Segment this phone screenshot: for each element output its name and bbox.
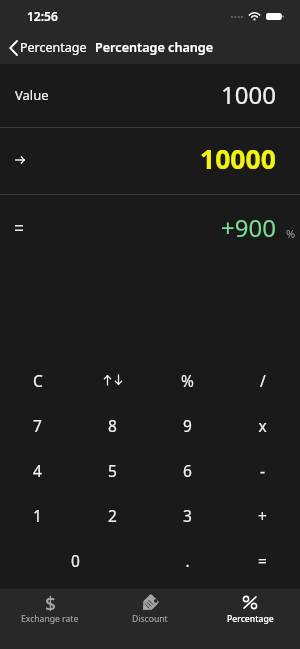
staticText: % [181, 370, 194, 391]
staticText: / [260, 370, 266, 391]
staticText: 2 [108, 505, 117, 526]
button[interactable]: 7 [0, 402, 75, 447]
staticText: $ [45, 591, 56, 611]
button[interactable]: 5 [75, 447, 150, 492]
button[interactable]: 1 [0, 492, 75, 537]
staticText: 0 [71, 550, 80, 571]
button[interactable]: Result plus 900 percent [0, 195, 300, 262]
button[interactable]: C [0, 357, 75, 402]
button[interactable]: = [225, 537, 300, 582]
button[interactable]: 0 [0, 537, 150, 582]
button[interactable]: Converted value 10000 [0, 128, 300, 194]
staticText: 1000 [221, 78, 276, 111]
button[interactable]: $ [0, 589, 100, 649]
staticText: Discount [132, 613, 168, 625]
button[interactable]: + [225, 492, 300, 537]
staticText: C [33, 370, 43, 391]
staticText: 6 [183, 460, 192, 481]
button[interactable]: . [150, 537, 225, 582]
staticText: 7 [33, 415, 42, 436]
button[interactable]: / [225, 357, 300, 402]
staticText: x [258, 415, 267, 436]
button[interactable]: Swap values [75, 357, 150, 402]
button[interactable]: 6 [150, 447, 225, 492]
staticText: Percentage [20, 39, 87, 56]
staticText: 4 [33, 460, 42, 481]
staticText: 12:56 [27, 8, 58, 24]
button[interactable]: 4 [0, 447, 75, 492]
staticText: - [260, 460, 265, 481]
staticText: . [185, 550, 190, 571]
button[interactable]: % [150, 357, 225, 402]
button[interactable]: Back to Percentage [0, 31, 93, 64]
button[interactable]: x [225, 402, 300, 447]
staticText: 9 [183, 415, 192, 436]
staticText: Value [15, 86, 49, 104]
staticText: 10000 [200, 141, 276, 177]
staticText: 3 [183, 505, 192, 526]
button[interactable]: 2 [75, 492, 150, 537]
button[interactable]: Value [0, 64, 300, 127]
button[interactable]: - [225, 447, 300, 492]
button[interactable]: Discount [100, 589, 200, 649]
staticText: Percentage [227, 613, 274, 625]
button[interactable]: 3 [150, 492, 225, 537]
button[interactable]: 9 [150, 402, 225, 447]
staticText: = [258, 550, 267, 571]
staticText: % [286, 226, 296, 241]
staticText: +900 [221, 211, 276, 244]
staticText: 8 [108, 415, 117, 436]
staticText: Exchange rate [21, 613, 79, 625]
button[interactable]: Percentage [200, 589, 300, 649]
button[interactable]: 8 [75, 402, 150, 447]
staticText: + [258, 505, 267, 526]
staticText: 5 [108, 460, 117, 481]
staticText: Percentage change [95, 39, 214, 56]
staticText: 1 [33, 505, 42, 526]
